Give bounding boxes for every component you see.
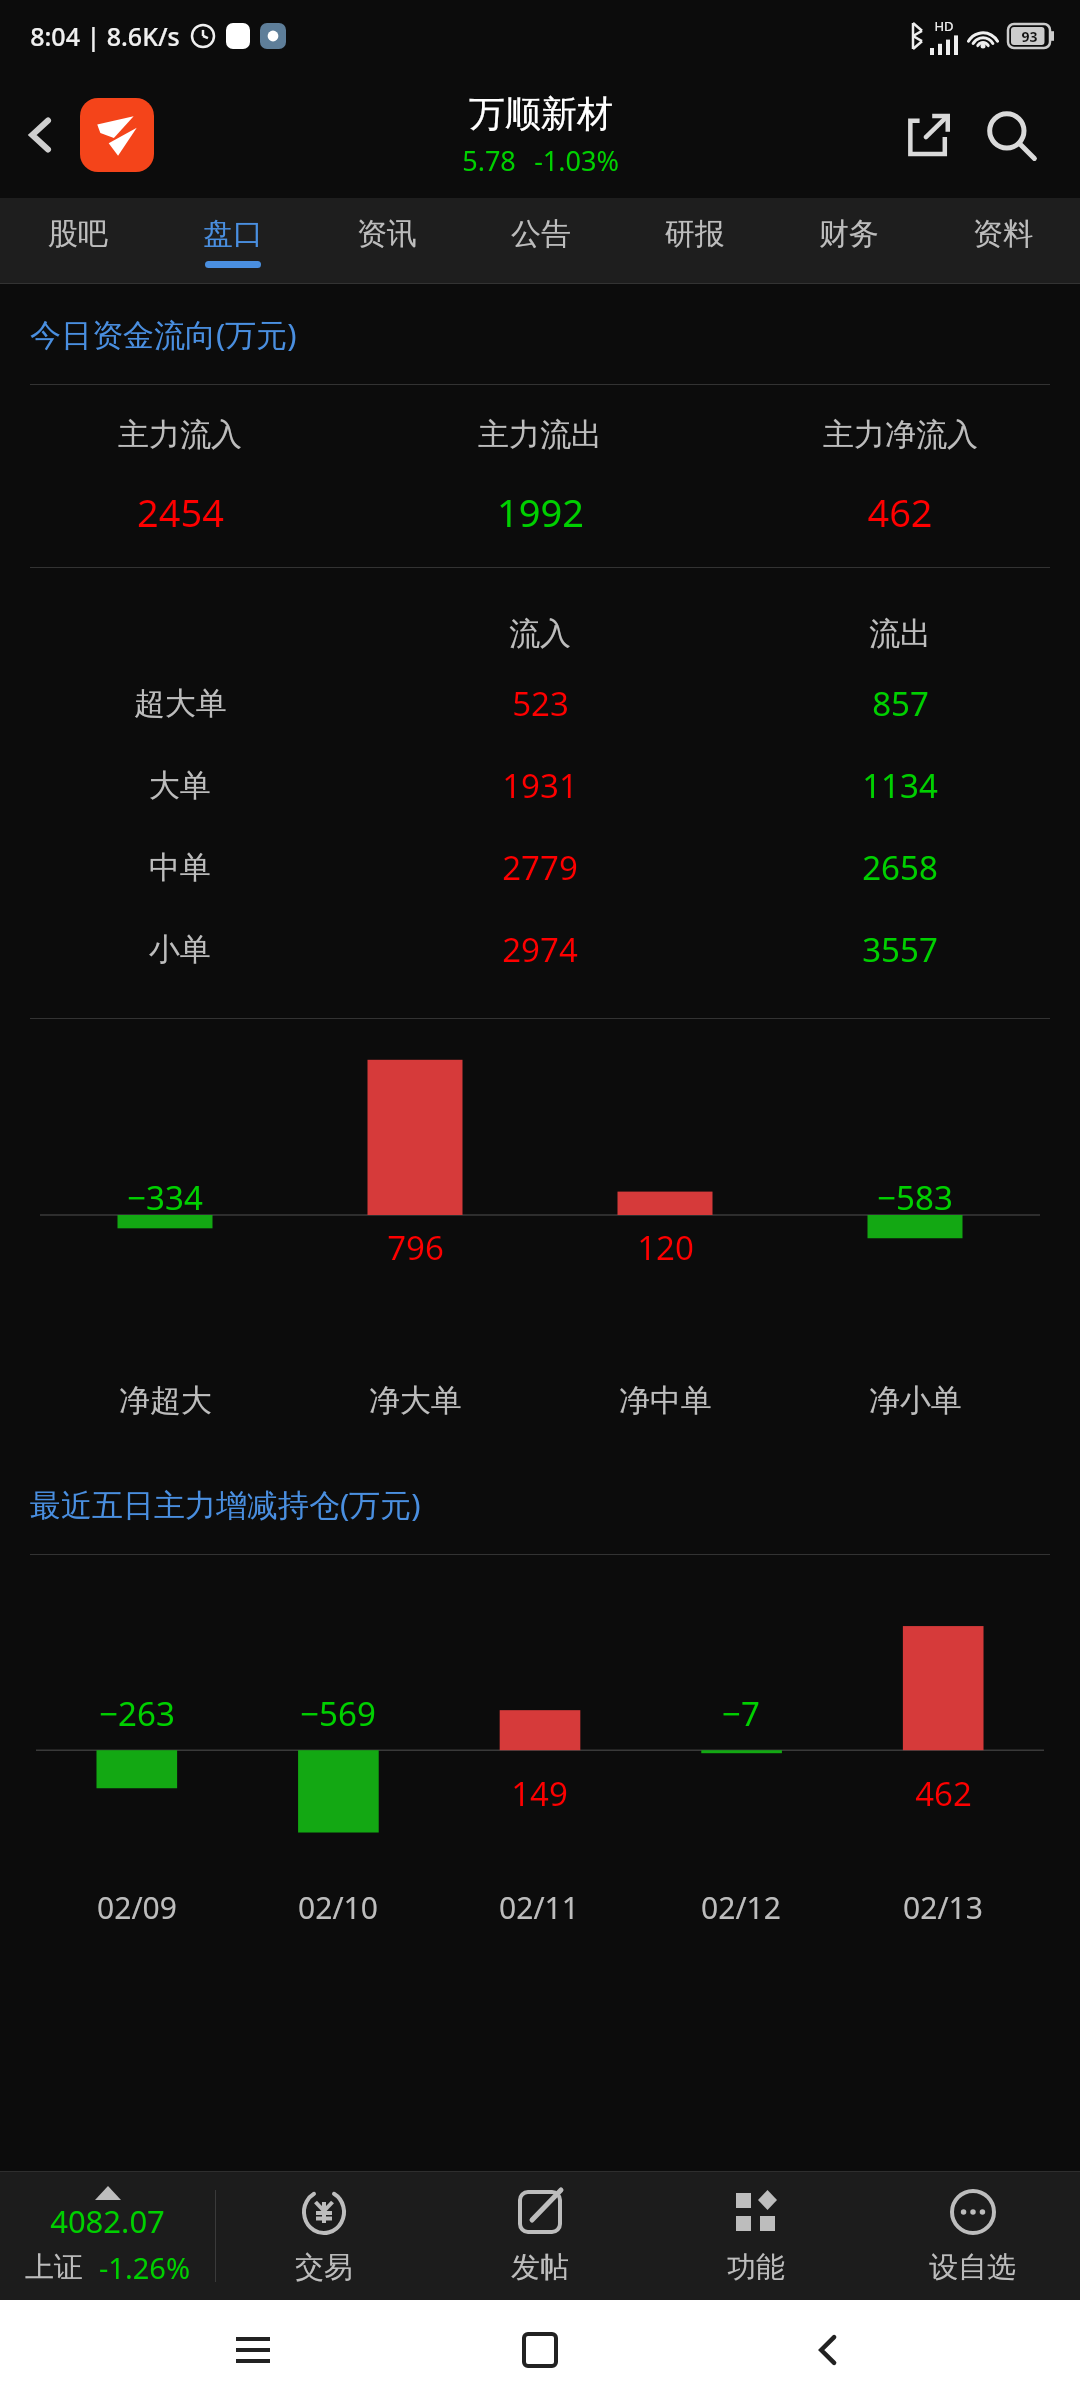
- button[interactable]: 小单: [0, 908, 1080, 990]
- button[interactable]: Home: [505, 2315, 575, 2385]
- staticText: 3557: [862, 927, 938, 972]
- staticText: 流出: [869, 614, 931, 653]
- button[interactable]: 设自选: [864, 2172, 1080, 2300]
- staticText: 公告: [511, 215, 571, 253]
- button[interactable]: Search: [968, 92, 1054, 178]
- button[interactable]: 公告: [464, 198, 618, 284]
- button[interactable]: 大单: [0, 744, 1080, 826]
- staticText: 中单: [149, 848, 211, 887]
- staticText: 1134: [862, 763, 938, 808]
- button[interactable]: Recent apps: [218, 2315, 288, 2385]
- staticText: −7: [722, 1691, 760, 1736]
- staticText: 857: [872, 681, 929, 726]
- staticText: 02/13: [903, 1887, 983, 1928]
- staticText: 462: [867, 486, 933, 538]
- staticText: 今日资金流向(万元): [30, 313, 297, 355]
- staticText: 1931: [502, 763, 578, 808]
- staticText: 02/12: [701, 1887, 781, 1928]
- button[interactable]: Share: [888, 95, 968, 175]
- staticText: 5.78: [462, 142, 516, 179]
- staticText: 流入: [509, 614, 571, 653]
- staticText: 1992: [497, 486, 584, 538]
- staticText: 2658: [862, 845, 938, 890]
- staticText: HD: [934, 17, 954, 35]
- button[interactable]: 4082.07: [0, 2172, 215, 2300]
- staticText: 02/09: [97, 1887, 177, 1928]
- staticText: 8:04 | 8.6K/s: [30, 19, 180, 53]
- staticText: 2974: [502, 927, 578, 972]
- staticText: 主力流出: [478, 415, 602, 454]
- staticText: 2454: [137, 486, 224, 538]
- staticText: 02/10: [298, 1887, 378, 1928]
- staticText: -1.03%: [534, 142, 619, 179]
- button[interactable]: 股吧: [0, 198, 155, 284]
- staticText: 设自选: [929, 2249, 1016, 2286]
- button[interactable]: 功能: [648, 2172, 864, 2300]
- staticText: −263: [99, 1691, 175, 1736]
- button[interactable]: 资讯: [310, 198, 464, 284]
- staticText: 超大单: [134, 684, 227, 723]
- staticText: 净中单: [619, 1381, 712, 1420]
- button[interactable]: Back: [0, 72, 82, 198]
- staticText: 财务: [819, 215, 879, 253]
- staticText: -1.26%: [99, 2248, 190, 2287]
- staticText: 净超大: [119, 1381, 212, 1420]
- staticText: 2779: [502, 845, 578, 890]
- staticText: 462: [915, 1771, 972, 1816]
- staticText: 02/11: [499, 1887, 579, 1928]
- button[interactable]: 资料: [926, 198, 1080, 284]
- staticText: 上证: [25, 2249, 83, 2286]
- staticText: 93: [1021, 27, 1038, 46]
- staticText: 万顺新材: [469, 91, 613, 136]
- staticText: 资讯: [357, 215, 417, 253]
- staticText: 功能: [727, 2249, 785, 2286]
- staticText: 研报: [665, 215, 725, 253]
- staticText: 发帖: [511, 2249, 569, 2286]
- staticText: −569: [300, 1691, 376, 1736]
- staticText: 4082.07: [50, 2200, 165, 2242]
- button[interactable]: App logo: [80, 98, 154, 172]
- button[interactable]: 研报: [618, 198, 772, 284]
- staticText: 120: [637, 1225, 694, 1270]
- staticText: 资料: [973, 215, 1033, 253]
- staticText: 大单: [149, 766, 211, 805]
- button[interactable]: 超大单: [0, 662, 1080, 744]
- staticText: 交易: [295, 2249, 353, 2286]
- button[interactable]: 中单: [0, 826, 1080, 908]
- staticText: 净小单: [869, 1381, 962, 1420]
- staticText: 523: [512, 681, 569, 726]
- staticText: 小单: [149, 930, 211, 969]
- staticText: 股吧: [48, 215, 108, 253]
- button[interactable]: Back: [793, 2315, 863, 2385]
- staticText: 最近五日主力增减持仓(万元): [30, 1483, 421, 1525]
- button[interactable]: 交易: [216, 2172, 432, 2300]
- staticText: −583: [877, 1175, 953, 1220]
- staticText: 净大单: [369, 1381, 462, 1420]
- staticText: 主力净流入: [823, 415, 978, 454]
- button[interactable]: 发帖: [432, 2172, 648, 2300]
- button[interactable]: 财务: [772, 198, 926, 284]
- staticText: 796: [387, 1225, 444, 1270]
- button[interactable]: 盘口: [155, 198, 310, 284]
- staticText: 主力流入: [118, 415, 242, 454]
- staticText: 149: [511, 1771, 568, 1816]
- staticText: −334: [127, 1175, 203, 1220]
- staticText: 盘口: [203, 215, 263, 253]
